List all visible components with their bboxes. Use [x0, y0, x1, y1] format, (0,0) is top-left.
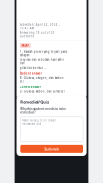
staticText: Submit [44, 146, 59, 151]
staticText: Masih kurang teliti dalam memahami soal [22, 119, 55, 126]
staticText: Correct answer [20, 85, 41, 89]
button[interactable]: Submit [20, 145, 83, 153]
staticText: 1. Bacalah proses yang terjadi pada taha… [20, 50, 67, 57]
button[interactable]: Masih kurang teliti dalam memahami soal [20, 117, 83, 142]
staticText: Answering 18 out of 20 questions [20, 31, 55, 38]
staticText: Why this student needs to take remedial? [20, 107, 66, 114]
staticText: D. Glukosa, karbon, dan sulfat sel [20, 90, 65, 93]
staticText: B. Glukosa, oksigen, dan karbon sel [20, 76, 64, 83]
staticText: SALAH [21, 44, 29, 47]
staticText: respirasi dan sebutkan hasil akhir dari [20, 58, 64, 65]
staticText: Remedial/Quiz [20, 99, 49, 105]
staticText: glikolisis berikut ... [20, 66, 47, 70]
staticText: Student answer [20, 72, 42, 75]
staticText: Submitted: April 24, 2024 – 10:47 AM [20, 23, 60, 30]
